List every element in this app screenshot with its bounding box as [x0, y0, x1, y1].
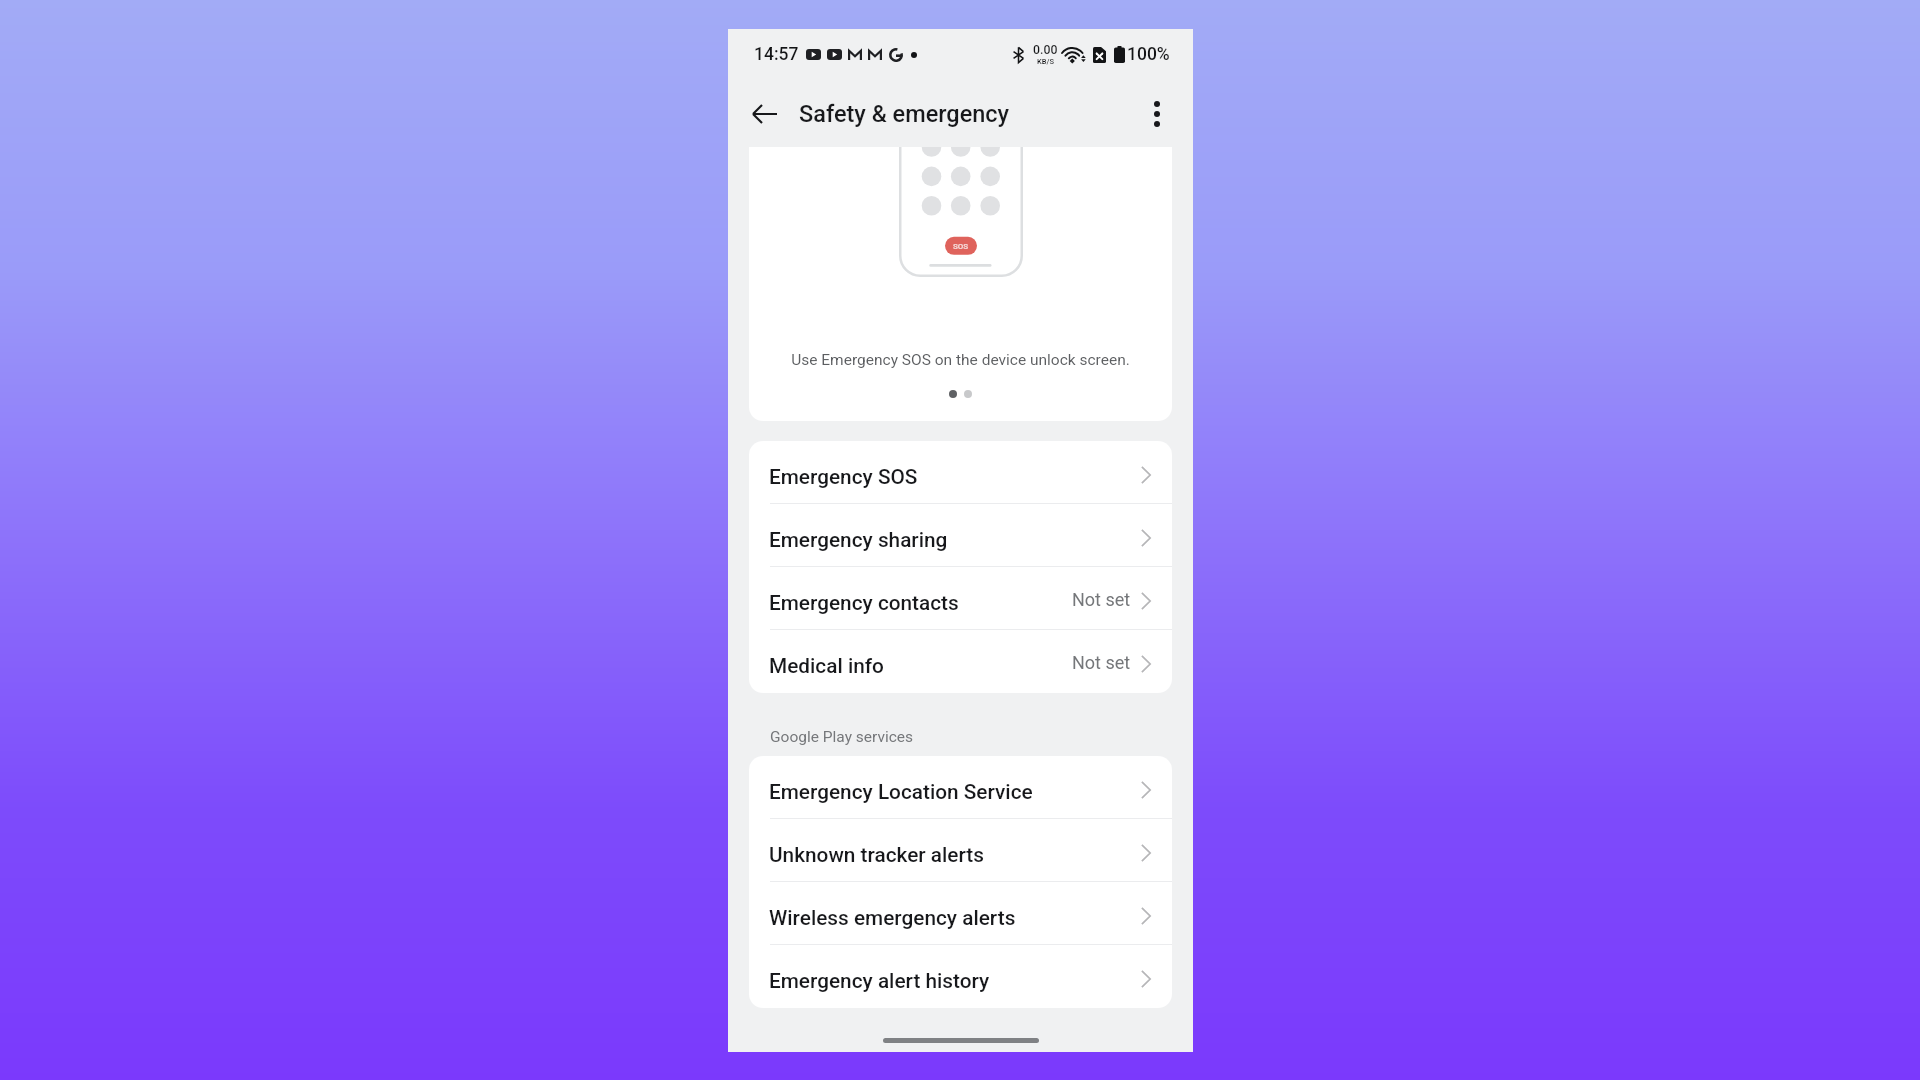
- staticText: 100%: [1127, 44, 1170, 65]
- button[interactable]: Page 2: [964, 390, 972, 398]
- button[interactable]: More options: [1135, 92, 1179, 136]
- staticText: SOS: [953, 242, 969, 251]
- staticText: Emergency sharing: [769, 528, 948, 552]
- staticText: KB/S: [1037, 57, 1054, 66]
- button[interactable]: Emergency SOS: [749, 441, 1172, 504]
- button[interactable]: Medical info: [749, 630, 1172, 693]
- button[interactable]: Back: [743, 92, 787, 136]
- staticText: Not set: [1072, 589, 1131, 610]
- staticText: Google Play services: [770, 728, 914, 746]
- button[interactable]: Emergency contacts: [749, 567, 1172, 630]
- button[interactable]: Page 1: [949, 390, 957, 398]
- staticText: Emergency contacts: [769, 591, 959, 615]
- button[interactable]: Wireless emergency alerts: [749, 882, 1172, 945]
- staticText: Emergency alert history: [769, 969, 990, 993]
- staticText: 14:57: [754, 44, 799, 65]
- button[interactable]: Unknown tracker alerts: [749, 819, 1172, 882]
- staticText: 0.00: [1033, 43, 1058, 57]
- button[interactable]: Emergency sharing: [749, 504, 1172, 567]
- staticText: Not set: [1072, 652, 1131, 673]
- staticText: Use Emergency SOS on the device unlock s…: [791, 351, 1130, 369]
- staticText: Medical info: [769, 654, 884, 678]
- button[interactable]: Emergency Location Service: [749, 756, 1172, 819]
- staticText: Emergency Location Service: [769, 780, 1033, 804]
- staticText: Unknown tracker alerts: [769, 843, 985, 867]
- button[interactable]: Emergency alert history: [749, 945, 1172, 1008]
- staticText: Emergency SOS: [769, 465, 918, 489]
- staticText: Wireless emergency alerts: [769, 906, 1016, 930]
- staticText: Safety & emergency: [799, 100, 1010, 128]
